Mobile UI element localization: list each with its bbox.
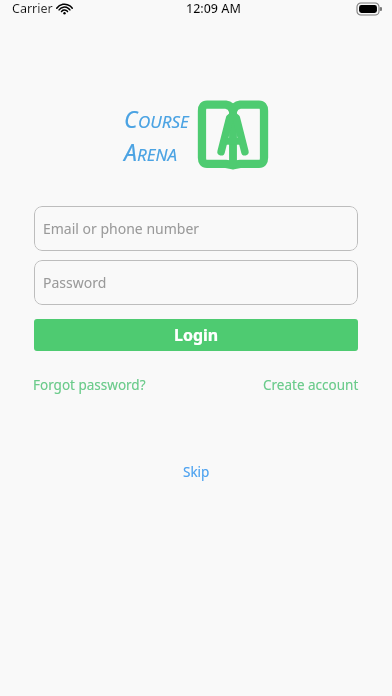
- staticText: A: [124, 136, 137, 167]
- staticText: Login: [174, 324, 219, 346]
- button[interactable]: Email or phone number: [34, 206, 358, 251]
- staticText: 12:09 AM: [186, 0, 241, 17]
- button[interactable]: Login: [34, 319, 358, 351]
- staticText: Password: [43, 273, 107, 292]
- staticText: Skip: [183, 463, 210, 481]
- staticText: RENA: [137, 143, 178, 166]
- button[interactable]: Forgot password?: [31, 372, 148, 398]
- button[interactable]: Skip: [173, 458, 220, 486]
- staticText: Forgot password?: [33, 376, 146, 394]
- staticText: OURSE: [138, 110, 189, 133]
- staticText: Email or phone number: [43, 219, 200, 238]
- staticText: Create account: [263, 376, 359, 394]
- button[interactable]: Create account: [261, 372, 361, 398]
- button[interactable]: Password: [34, 260, 358, 305]
- staticText: C: [124, 103, 138, 134]
- staticText: Carrier: [12, 0, 53, 17]
